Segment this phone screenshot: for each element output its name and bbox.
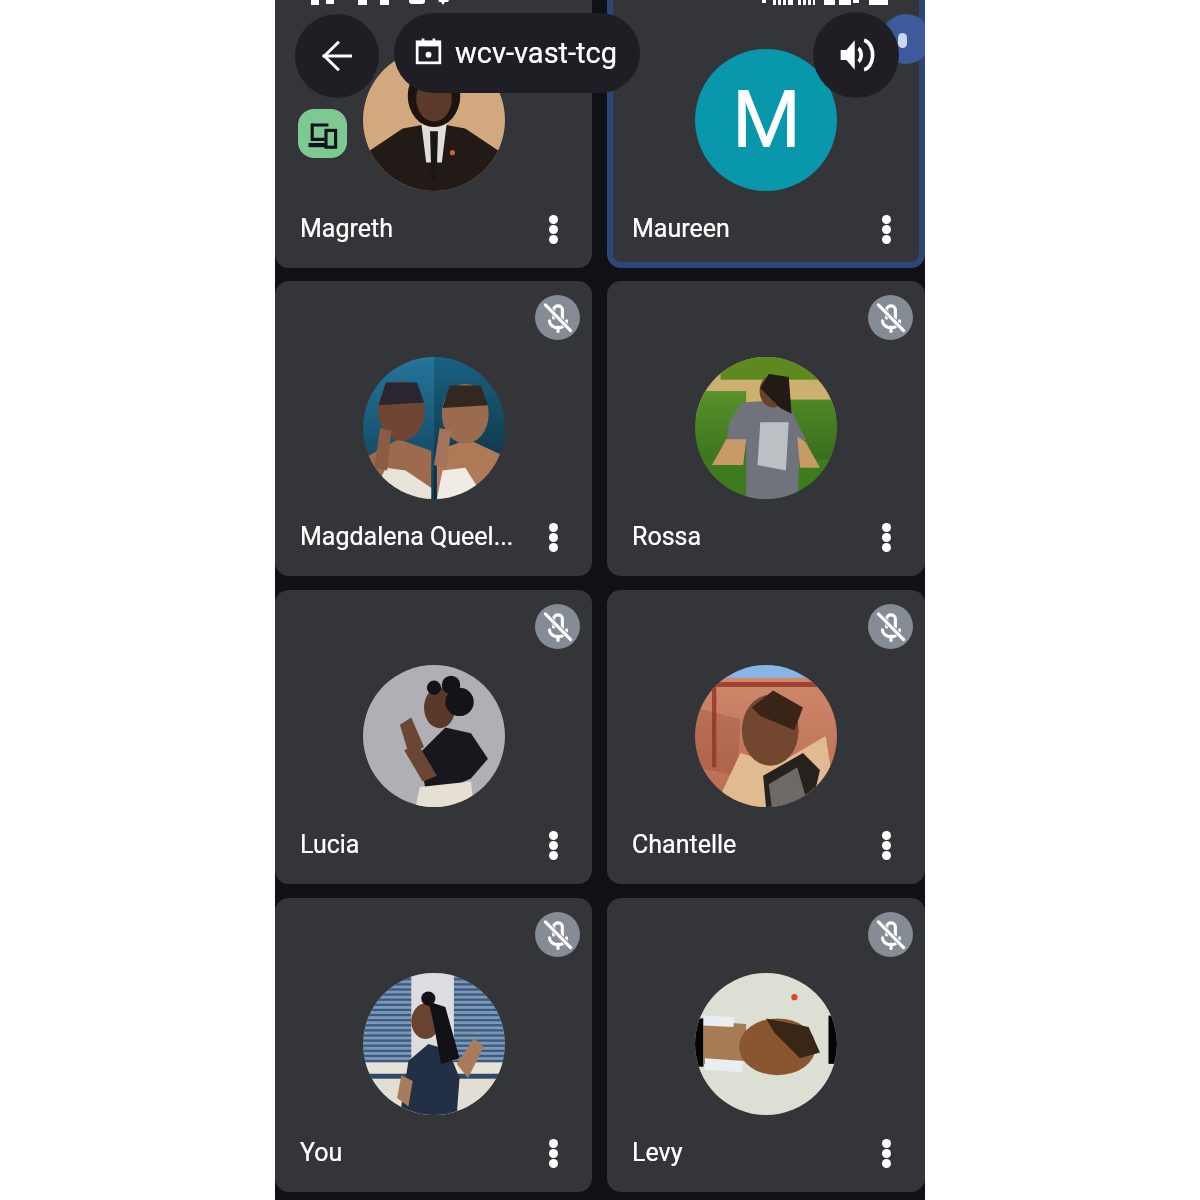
button[interactable]: Cast to device	[298, 109, 347, 158]
staticText: wcv-vast-tcg	[455, 36, 618, 70]
button[interactable]: wcv-vast-tcg	[394, 13, 640, 93]
button[interactable]: Chantelle is muted	[607, 590, 925, 884]
staticText: M	[732, 74, 801, 167]
staticText: Rossa	[632, 522, 702, 551]
button[interactable]: More options for You	[529, 1129, 577, 1177]
button[interactable]: More options for Rossa	[862, 513, 910, 561]
staticText: Levy	[632, 1138, 683, 1167]
button[interactable]: Chantelle is muted	[868, 604, 913, 649]
button[interactable]: Lucia is muted	[275, 590, 592, 884]
button[interactable]: You is muted	[535, 912, 580, 957]
button[interactable]: More options for Lucia	[529, 821, 577, 869]
button[interactable]: Speaker	[813, 12, 899, 98]
button[interactable]: Magdalena Queel... is muted	[535, 295, 580, 340]
button[interactable]: Magreth	[275, 0, 592, 268]
button[interactable]: Back	[295, 14, 379, 98]
staticText: Lucia	[300, 830, 360, 859]
button[interactable]: More options for Chantelle	[862, 821, 910, 869]
staticText: Magreth	[300, 214, 393, 243]
button[interactable]: More options for Maureen	[862, 205, 910, 253]
staticText: Magdalena Queel...	[300, 522, 514, 551]
button[interactable]: Lucia is muted	[535, 604, 580, 649]
button[interactable]: More options for Magdalena Queel...	[529, 513, 577, 561]
button[interactable]: Rossa is muted	[607, 281, 925, 576]
staticText: Chantelle	[632, 830, 737, 859]
button[interactable]: Magdalena Queel... is muted	[275, 281, 592, 576]
button[interactable]: M	[607, 0, 925, 268]
staticText: Maureen	[632, 214, 730, 243]
staticText: You	[300, 1138, 343, 1167]
button[interactable]: More options for Magreth	[529, 205, 577, 253]
button[interactable]: Levy is muted	[607, 898, 925, 1192]
button[interactable]: Rossa is muted	[868, 295, 913, 340]
button[interactable]: You is muted	[275, 898, 592, 1192]
button[interactable]: More options for Levy	[862, 1129, 910, 1177]
button[interactable]: Levy is muted	[868, 912, 913, 957]
